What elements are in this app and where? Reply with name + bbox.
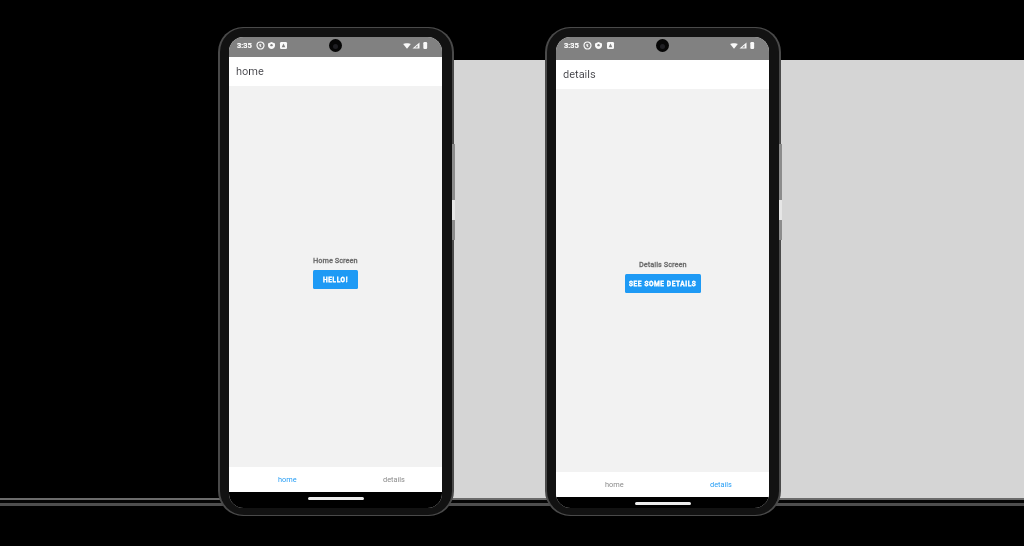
button[interactable]: SEE SOME DETAILS <box>625 274 701 293</box>
button[interactable]: details <box>335 467 442 492</box>
button[interactable]: details <box>662 472 769 497</box>
staticText: details <box>563 68 596 81</box>
button[interactable]: home <box>229 467 335 492</box>
staticText: HELLO! <box>323 276 349 284</box>
staticText: Details Screen <box>639 260 687 269</box>
staticText: home <box>278 475 297 484</box>
staticText: home <box>605 480 624 489</box>
button[interactable]: HELLO! <box>313 270 358 289</box>
staticText: 3:35 <box>237 41 252 50</box>
staticText: 3:35 <box>564 41 579 50</box>
staticText: home <box>236 65 264 78</box>
staticText: details <box>383 475 405 484</box>
button[interactable]: home <box>556 472 662 497</box>
staticText: details <box>710 480 732 489</box>
staticText: Home Screen <box>313 256 358 265</box>
staticText: SEE SOME DETAILS <box>629 280 697 288</box>
